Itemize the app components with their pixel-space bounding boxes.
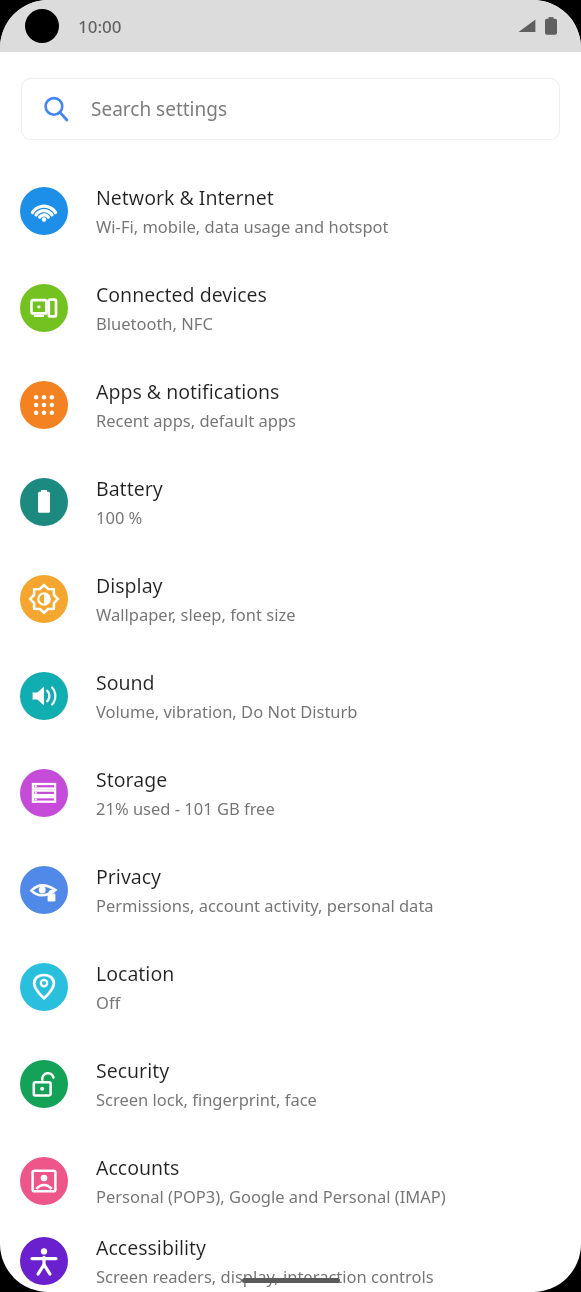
staticText: 10:00 — [78, 15, 122, 38]
button[interactable]: Display — [0, 550, 581, 647]
staticText: 100 % — [96, 506, 143, 528]
staticText: 21% used - 101 GB free — [96, 797, 275, 819]
staticText: Location — [96, 960, 175, 987]
staticText: Volume, vibration, Do Not Disturb — [96, 700, 358, 722]
staticText: Bluetooth, NFC — [96, 312, 213, 334]
button[interactable]: Apps & notifications — [0, 356, 581, 453]
staticText: Screen readers, display, interaction con… — [96, 1265, 434, 1287]
staticText: Wi-Fi, mobile, data usage and hotspot — [96, 215, 389, 237]
staticText: Accessibility — [96, 1234, 206, 1261]
staticText: Accounts — [96, 1154, 180, 1181]
button[interactable]: Security — [0, 1035, 581, 1132]
button[interactable]: Location — [0, 938, 581, 1035]
button[interactable]: Search settings — [21, 78, 560, 140]
staticText: Connected devices — [96, 281, 267, 308]
button[interactable]: Sound — [0, 647, 581, 744]
staticText: Search settings — [91, 96, 228, 122]
staticText: Recent apps, default apps — [96, 409, 296, 431]
staticText: Network & Internet — [96, 184, 274, 211]
button[interactable]: Privacy — [0, 841, 581, 938]
staticText: Privacy — [96, 863, 162, 890]
button[interactable]: Network & Internet — [0, 162, 581, 259]
staticText: Off — [96, 991, 121, 1013]
button[interactable]: Accounts — [0, 1132, 581, 1229]
staticText: Apps & notifications — [96, 378, 280, 405]
staticText: Display — [96, 572, 163, 599]
button[interactable]: Connected devices — [0, 259, 581, 356]
staticText: Sound — [96, 669, 155, 696]
staticText: Wallpaper, sleep, font size — [96, 603, 296, 625]
staticText: Personal (POP3), Google and Personal (IM… — [96, 1185, 446, 1207]
button[interactable]: Storage — [0, 744, 581, 841]
staticText: Security — [96, 1057, 170, 1084]
staticText: Screen lock, fingerprint, face — [96, 1088, 317, 1110]
button[interactable]: Battery — [0, 453, 581, 550]
staticText: Battery — [96, 475, 163, 502]
button[interactable]: Accessibility — [0, 1229, 581, 1292]
staticText: Permissions, account activity, personal … — [96, 894, 434, 916]
staticText: Storage — [96, 766, 168, 793]
